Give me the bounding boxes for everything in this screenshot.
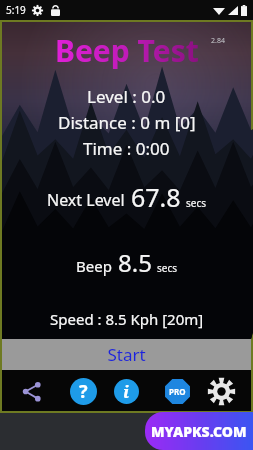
staticText: i (123, 380, 130, 403)
button[interactable]: Pro version (160, 374, 194, 408)
button[interactable]: Start (2, 339, 251, 370)
staticText: 67.8 (131, 180, 181, 214)
staticText: Next Level (47, 189, 125, 211)
staticText: MYAPKS.COM (151, 422, 247, 441)
staticText: Start (107, 343, 146, 366)
staticText: secs (157, 261, 178, 275)
button[interactable]: Help (66, 374, 100, 408)
staticText: Level : 0.0 (87, 85, 166, 108)
staticText: 5:19 (6, 3, 26, 17)
staticText: 8.5 (118, 246, 152, 279)
staticText: Beep Test (55, 30, 199, 71)
staticText: Speed : 8.5 Kph [20m] (50, 309, 204, 329)
staticText: 2.84 (211, 36, 225, 46)
staticText: Time : 0:00 (83, 137, 170, 160)
button[interactable]: Settings (203, 373, 239, 409)
staticText: Beep (76, 256, 112, 276)
button[interactable]: Info (109, 374, 143, 408)
staticText: secs (186, 196, 207, 210)
button[interactable]: Share (14, 374, 48, 408)
staticText: PRO (169, 386, 186, 397)
staticText: Distance : 0 m [0] (58, 111, 196, 134)
staticText: ? (79, 379, 88, 404)
